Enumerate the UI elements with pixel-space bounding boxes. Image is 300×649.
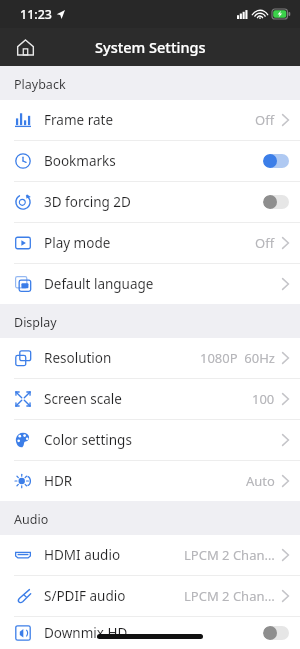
staticText: Default language [44,275,154,293]
staticText: Auto [246,472,275,490]
staticText: Screen scale [44,390,122,408]
button[interactable]: Color settings [0,420,300,460]
button[interactable]: Home [8,30,42,64]
staticText: Play mode [44,234,111,252]
staticText: Audio [14,511,49,528]
button[interactable]: Screen scale [0,379,300,419]
staticText: System Settings [95,37,206,57]
staticText: 11:23 [20,6,53,23]
staticText: Color settings [44,431,132,449]
staticText: Frame rate [44,111,113,129]
staticText: Off [255,234,275,252]
button[interactable]: HDR [0,461,300,501]
staticText: Display [14,314,57,331]
staticText: 100 [252,390,275,408]
button[interactable]: 3D forcing 2D [0,182,300,222]
button[interactable]: Off [263,626,289,640]
button[interactable]: Default language [0,264,300,304]
button[interactable]: Frame rate [0,100,300,140]
button[interactable]: Resolution [0,338,300,378]
staticText: LPCM 2 Chan… [184,587,275,605]
staticText: S/PDIF audio [44,587,126,605]
button[interactable]: Bookmarks [0,141,300,181]
staticText: Downmix HD [44,624,128,642]
staticText: Bookmarks [44,152,116,170]
staticText: HDR [44,472,73,490]
button[interactable]: Play mode [0,223,300,263]
staticText: Playback [14,76,66,93]
button[interactable]: S/PDIF audio [0,576,300,616]
staticText: 1080P 60Hz [200,349,275,367]
button[interactable]: On [263,154,289,168]
staticText: 3D forcing 2D [44,193,131,211]
staticText: HDMI audio [44,546,121,564]
staticText: Resolution [44,349,112,367]
button[interactable]: Downmix HD [0,617,300,649]
staticText: Off [255,111,275,129]
button[interactable]: HDMI audio [0,535,300,575]
button[interactable]: Off [263,195,289,209]
staticText: LPCM 2 Chan… [184,546,275,564]
